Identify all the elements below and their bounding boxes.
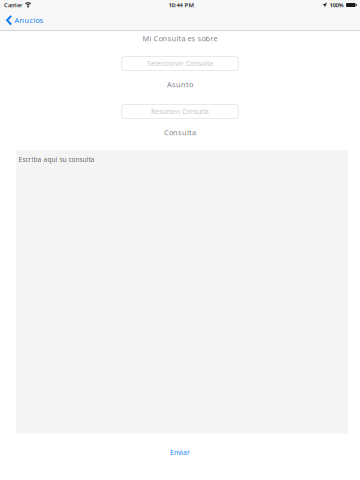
staticText: Mi Consulta es sobre [142, 33, 217, 43]
button[interactable]: Enviar [170, 447, 190, 457]
staticText: Enviar [170, 448, 190, 457]
staticText: Seleccionar Consulta [147, 59, 213, 68]
button[interactable]: Anucios [0, 10, 49, 30]
staticText: Consulta [164, 127, 196, 137]
staticText: Carrier [4, 1, 22, 9]
staticText: Anucios [14, 15, 43, 25]
staticText: Escriba aquí su consulta [18, 155, 94, 164]
staticText: 10:44 PM [168, 1, 193, 9]
staticText: Asunto [167, 79, 193, 89]
staticText: 100% [329, 1, 343, 9]
button[interactable]: Seleccionar Consulta [121, 56, 238, 70]
staticText: Resúmen Consulta [151, 107, 209, 116]
